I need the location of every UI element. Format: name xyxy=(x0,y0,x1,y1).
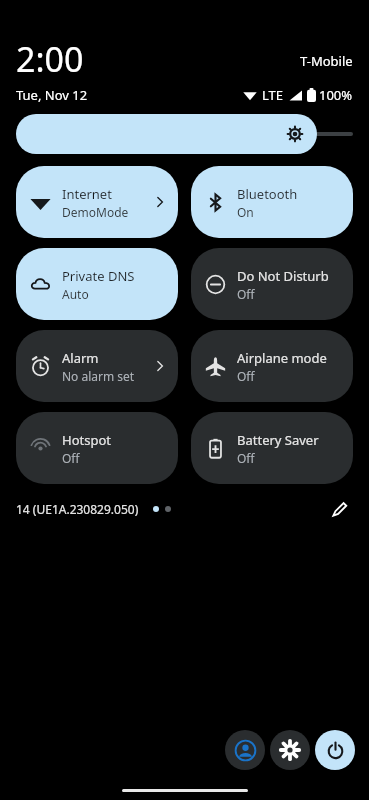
staticText: Internet xyxy=(62,185,112,203)
button[interactable]: Settings xyxy=(270,730,310,770)
button[interactable]: Bluetooth xyxy=(191,166,353,238)
button[interactable]: Edit tiles xyxy=(325,495,353,523)
staticText: Off xyxy=(237,368,255,384)
staticText: 2:00 xyxy=(16,36,84,82)
staticText: 100% xyxy=(319,86,353,104)
staticText: Auto xyxy=(62,286,89,302)
button[interactable]: Battery Saver xyxy=(191,412,353,484)
staticText: Off xyxy=(237,450,255,466)
staticText: Alarm xyxy=(62,349,99,367)
staticText: Off xyxy=(237,286,255,302)
staticText: On xyxy=(237,204,254,220)
staticText: Tue, Nov 12 xyxy=(16,86,88,104)
staticText: DemoMode xyxy=(62,204,129,220)
staticText: 14 (UE1A.230829.050) xyxy=(16,501,139,517)
button[interactable]: Hotspot xyxy=(16,412,178,484)
staticText: LTE xyxy=(262,86,284,104)
button[interactable]: Private DNS xyxy=(16,248,178,320)
staticText: Bluetooth xyxy=(237,185,298,203)
staticText: No alarm set xyxy=(62,368,135,384)
button[interactable]: Airplane mode xyxy=(191,330,353,402)
staticText: Battery Saver xyxy=(237,431,319,449)
staticText: Hotspot xyxy=(62,431,111,449)
staticText: Airplane mode xyxy=(237,349,327,367)
staticText: Off xyxy=(62,450,80,466)
button[interactable]: Power xyxy=(315,730,355,770)
staticText: T-Mobile xyxy=(300,52,353,70)
staticText: Do Not Disturb xyxy=(237,267,329,285)
button[interactable]: User xyxy=(225,730,265,770)
button[interactable]: Do Not Disturb xyxy=(191,248,353,320)
button[interactable]: Internet xyxy=(16,166,178,238)
staticText: Private DNS xyxy=(62,267,135,285)
button[interactable]: Alarm xyxy=(16,330,178,402)
button[interactable] xyxy=(16,114,353,154)
